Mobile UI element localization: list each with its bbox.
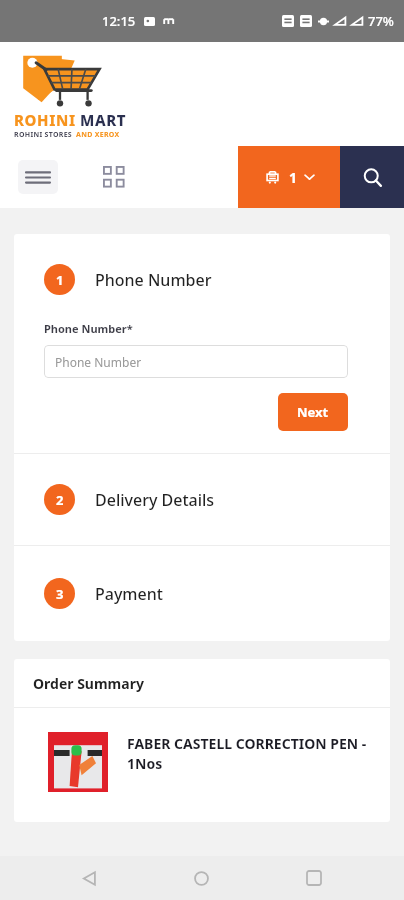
- button[interactable]: Next: [278, 393, 348, 431]
- button[interactable]: Phone Number: [44, 345, 348, 378]
- button[interactable]: Categories: [98, 161, 130, 193]
- button[interactable]: 1: [44, 264, 390, 295]
- staticText: Phone Number: [55, 354, 142, 370]
- button[interactable]: Home: [178, 856, 224, 900]
- staticText: Order Summary: [33, 674, 144, 693]
- staticText: Delivery Details: [95, 489, 215, 511]
- button[interactable]: 3: [14, 546, 390, 641]
- staticText: Payment: [95, 583, 163, 605]
- button[interactable]: Back: [66, 856, 112, 900]
- staticText: AND XEROX: [76, 130, 120, 140]
- button[interactable]: Recents: [291, 856, 337, 900]
- staticText: 3: [56, 585, 64, 603]
- staticText: Phone Number*: [44, 321, 133, 336]
- staticText: Next: [297, 403, 329, 421]
- staticText: ROHINI STORES: [14, 130, 73, 140]
- staticText: 2: [56, 491, 64, 509]
- staticText: 77%: [368, 12, 394, 30]
- button[interactable]: Search: [340, 146, 404, 208]
- staticText: ROHINI: [14, 110, 76, 130]
- staticText: MART: [80, 110, 127, 130]
- staticText: FABER CASTELL CORRECTION PEN - 1Nos: [127, 734, 380, 774]
- button[interactable]: 1: [238, 146, 340, 208]
- staticText: Phone Number: [95, 269, 212, 291]
- button[interactable]: 2: [14, 454, 390, 545]
- staticText: 1: [56, 271, 64, 289]
- staticText: 12:15: [102, 12, 136, 30]
- button[interactable]: FABER CASTELL CORRECTION PEN - 1Nos: [48, 732, 380, 792]
- button[interactable]: Menu: [18, 160, 58, 194]
- staticText: 1: [289, 168, 298, 187]
